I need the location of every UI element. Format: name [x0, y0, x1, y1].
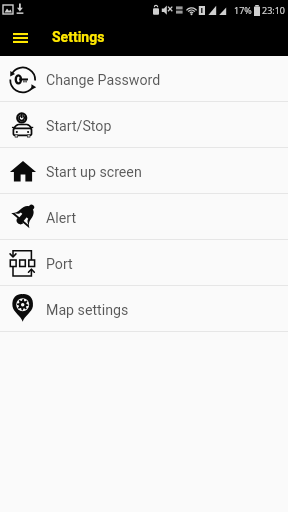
staticText: 23:10	[262, 4, 286, 16]
button[interactable]: Start up screen	[0, 148, 288, 194]
staticText: Alert	[46, 210, 77, 227]
staticText: Start/Stop	[46, 118, 112, 135]
button[interactable]: Alert	[0, 194, 288, 240]
staticText: Map settings	[46, 302, 129, 319]
staticText: Change Password	[46, 72, 161, 89]
button[interactable]: Start/Stop	[0, 102, 288, 148]
staticText: 17%	[234, 4, 252, 16]
staticText: Start up screen	[46, 164, 142, 181]
staticText: Port	[46, 256, 73, 273]
staticText: Settings	[52, 29, 105, 45]
button[interactable]: Port	[0, 240, 288, 286]
button[interactable]: Map settings	[0, 286, 288, 332]
button[interactable]: Open navigation menu	[0, 19, 40, 56]
button[interactable]: Change Password	[0, 56, 288, 102]
